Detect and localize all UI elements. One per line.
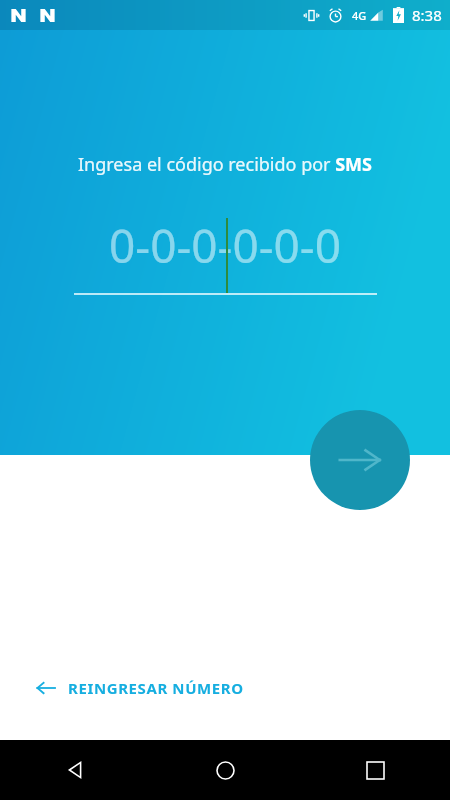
button[interactable]: 0-0-0-0-0-0 <box>74 214 376 298</box>
button[interactable]: REINGRESAR NÚMERO <box>26 668 254 708</box>
button[interactable]: Continuar <box>310 410 410 510</box>
staticText: 0-0-0-0-0-0 <box>74 214 376 277</box>
button[interactable]: Recents <box>353 748 397 792</box>
staticText: Ingresa el código recibido por SMS <box>24 152 426 177</box>
staticText: REINGRESAR NÚMERO <box>68 678 244 698</box>
staticText: 4G <box>352 8 367 23</box>
button[interactable]: Home <box>203 748 247 792</box>
button[interactable]: Back <box>53 748 97 792</box>
staticText: 8:38 <box>412 5 442 25</box>
